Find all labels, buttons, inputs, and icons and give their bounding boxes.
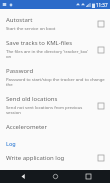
staticText: Password to start/stop the tracker and t… [6, 76, 105, 87]
button[interactable]: Unchecked [96, 101, 105, 110]
staticText: Write application log [6, 154, 65, 162]
button[interactable]: Accelerometer [0, 119, 110, 135]
button[interactable]: Home [45, 170, 65, 183]
staticText: Password [6, 67, 34, 75]
button[interactable]: Save tracks to KML-files [0, 35, 110, 63]
button[interactable]: Unchecked [96, 153, 105, 162]
staticText: 11:37 [96, 2, 108, 8]
button[interactable]: Recent apps [78, 170, 98, 183]
button[interactable]: Back [13, 170, 33, 183]
staticText: Log [6, 140, 16, 147]
button[interactable]: Autostart [0, 12, 110, 35]
staticText: Autostart [6, 16, 33, 24]
button[interactable]: Write application log [0, 149, 110, 166]
staticText: Start the service on boot [6, 25, 56, 31]
staticText: Save tracks to KML-files [6, 39, 73, 47]
staticText: Send not sent locations from previous se… [6, 104, 92, 115]
staticText: Send old locations [6, 95, 58, 103]
button[interactable]: Password [0, 63, 110, 91]
button[interactable]: Send old locations [0, 91, 110, 119]
staticText: Accelerometer [6, 123, 47, 131]
button[interactable]: Unchecked [96, 19, 105, 28]
staticText: The files are in the directory 'tracker_… [6, 48, 92, 59]
button[interactable]: Unchecked [96, 45, 105, 54]
